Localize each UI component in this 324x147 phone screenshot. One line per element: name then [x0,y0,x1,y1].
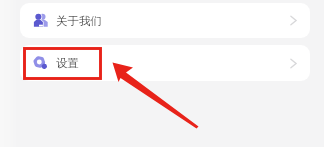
staticText: 设置 [56,56,79,70]
button[interactable]: 关于我们 [20,3,310,38]
staticText: 关于我们 [56,14,102,28]
other: Open [289,14,298,27]
button[interactable]: 设置 [20,45,310,81]
other: Open [289,57,298,70]
